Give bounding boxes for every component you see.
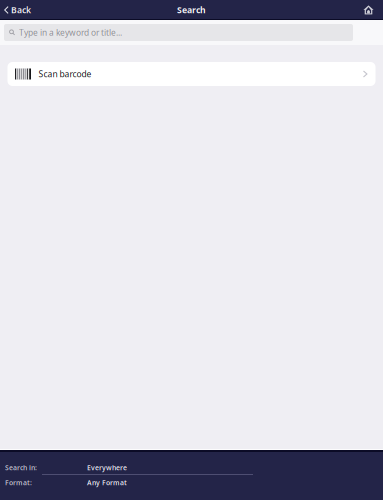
button[interactable]: Back	[0, 0, 37, 19]
button[interactable]: Home	[363, 0, 383, 19]
staticText: Everywhere	[87, 463, 127, 472]
button[interactable]: Scan barcode	[7, 62, 375, 86]
button[interactable]: Search in:	[0, 462, 383, 473]
staticText: Search in:	[5, 463, 37, 472]
staticText: Search	[177, 4, 206, 16]
staticText: Any Format	[87, 478, 127, 487]
button[interactable]: Format:	[0, 477, 383, 488]
staticText: Format:	[5, 478, 32, 487]
staticText: Type in a keyword or title...	[19, 27, 122, 38]
button[interactable]: Type in a keyword or title...	[4, 24, 353, 41]
staticText: Scan barcode	[38, 68, 91, 80]
staticText: Back	[11, 4, 31, 16]
